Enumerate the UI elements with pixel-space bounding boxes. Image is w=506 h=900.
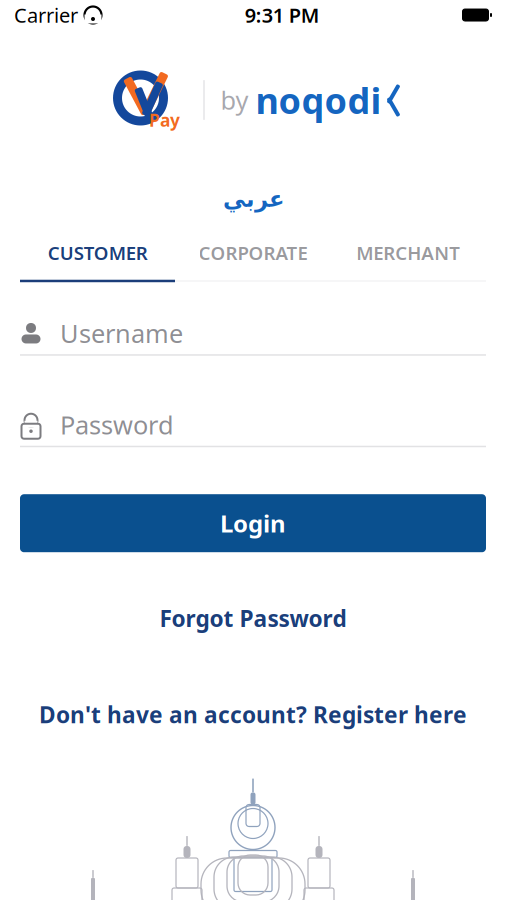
- button[interactable]: Don't have an account? Register here: [23, 691, 483, 737]
- staticText: CORPORATE: [198, 240, 307, 265]
- staticText: MERCHANT: [356, 240, 460, 265]
- staticText: عربي: [222, 186, 283, 212]
- staticText: Login: [220, 507, 286, 539]
- staticText: Forgot Password: [159, 603, 346, 633]
- staticText: by: [220, 83, 248, 117]
- button[interactable]: CORPORATE: [175, 236, 331, 270]
- button[interactable]: Login: [20, 494, 486, 552]
- staticText: 9:31 PM: [245, 2, 320, 28]
- staticText: noqodi: [255, 76, 381, 124]
- staticText: Password: [60, 408, 174, 441]
- button[interactable]: CUSTOMER: [20, 236, 175, 270]
- button[interactable]: MERCHANT: [331, 236, 486, 270]
- button[interactable]: Forgot Password: [143, 595, 362, 641]
- staticText: Username: [60, 316, 183, 350]
- staticText: CUSTOMER: [48, 240, 148, 265]
- staticText: Carrier: [14, 2, 78, 28]
- button[interactable]: عربي: [208, 180, 297, 218]
- staticText: Pay: [149, 108, 180, 131]
- staticText: Don't have an account? Register here: [39, 699, 467, 729]
